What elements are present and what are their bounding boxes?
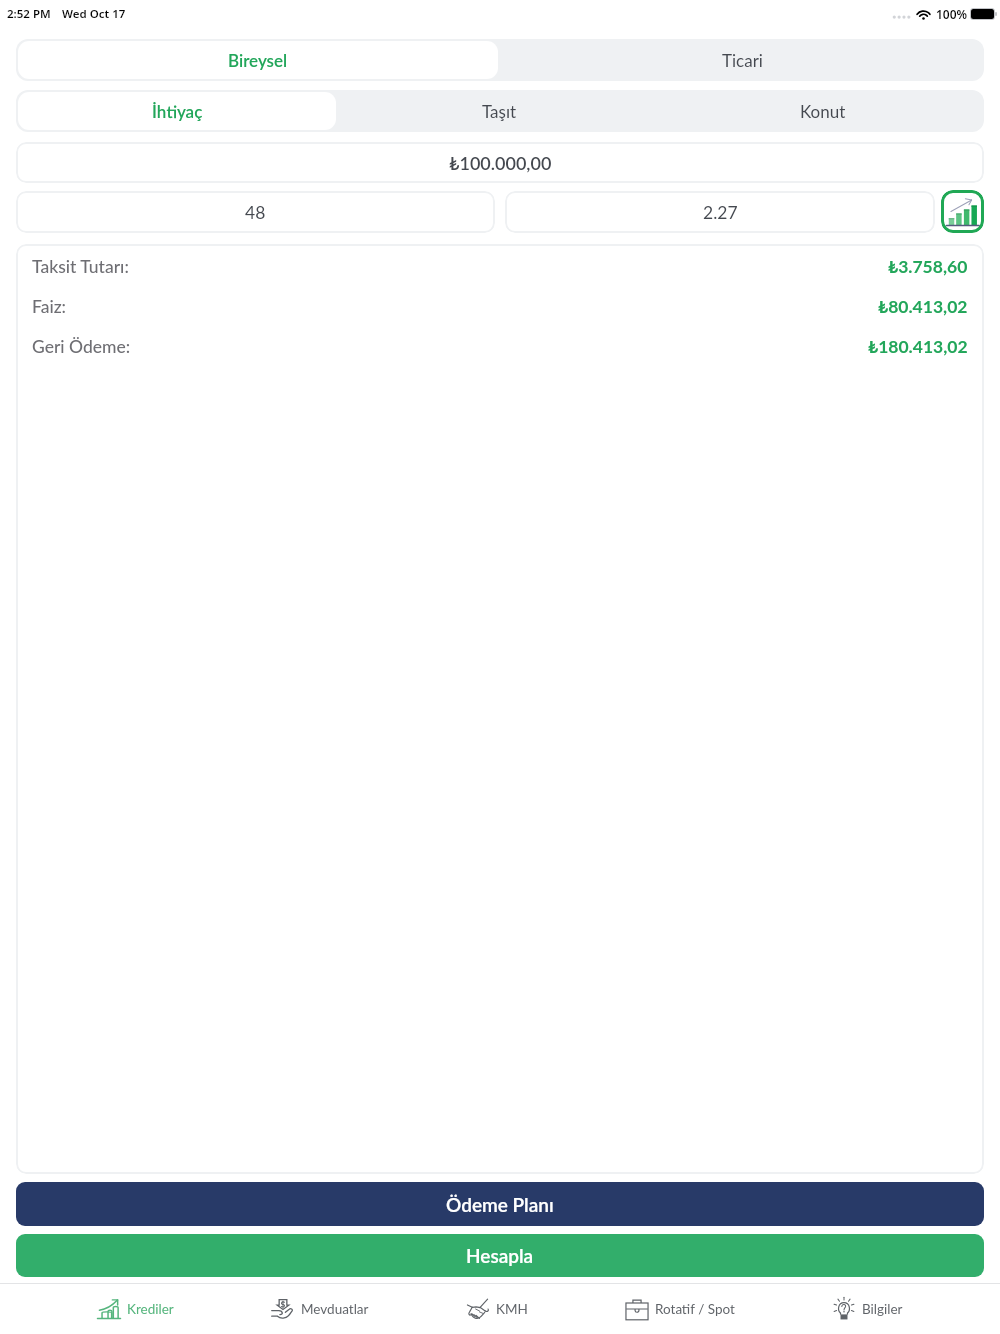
button[interactable]: Grafik	[941, 190, 984, 233]
staticText: Konut	[800, 101, 846, 121]
button[interactable]: Krediler	[97, 1297, 174, 1321]
staticText: ₺80.413,02	[878, 296, 968, 317]
button[interactable]: Rotatif / Spot	[625, 1297, 735, 1321]
staticText: Geri Ödeme:	[32, 336, 131, 357]
staticText: Faiz:	[32, 296, 67, 317]
staticText: 48	[245, 202, 266, 223]
staticText: 100%	[936, 6, 968, 22]
staticText: KMH	[496, 1301, 528, 1317]
staticText: ₺100.000,00	[449, 152, 552, 174]
staticText: Bireysel	[228, 50, 288, 70]
button[interactable]: Taşıt	[340, 92, 659, 130]
staticText: Krediler	[127, 1301, 174, 1317]
button[interactable]: Hesapla	[16, 1234, 984, 1277]
staticText: Taşıt	[482, 101, 517, 121]
button[interactable]: Bilgiler	[832, 1297, 903, 1321]
button[interactable]: KMH	[466, 1297, 528, 1321]
button[interactable]: ₺100.000,00	[16, 142, 984, 183]
staticText: Hesapla	[466, 1244, 534, 1267]
button[interactable]: Ticari	[502, 41, 982, 79]
button[interactable]: 48	[16, 191, 495, 233]
staticText: İhtiyaç	[152, 101, 203, 121]
staticText: 2.27	[703, 202, 738, 223]
staticText: ₺3.758,60	[888, 256, 968, 277]
button[interactable]: 2.27	[505, 191, 935, 233]
button[interactable]: Bireysel	[18, 41, 498, 79]
staticText: Wed Oct 17	[62, 6, 126, 22]
button[interactable]: Konut	[663, 92, 982, 130]
staticText: Ticari	[722, 50, 763, 70]
staticText: 2:52 PM	[7, 6, 51, 22]
staticText: ₺180.413,02	[868, 336, 968, 357]
staticText: Bilgiler	[862, 1301, 903, 1317]
button[interactable]: Ödeme Planı	[16, 1182, 984, 1226]
staticText: Mevduatlar	[301, 1301, 369, 1317]
staticText: Taksit Tutarı:	[32, 256, 129, 277]
button[interactable]: Mevduatlar	[271, 1297, 369, 1321]
button[interactable]: İhtiyaç	[18, 92, 336, 130]
staticText: Rotatif / Spot	[655, 1301, 735, 1317]
staticText: Ödeme Planı	[446, 1193, 554, 1216]
